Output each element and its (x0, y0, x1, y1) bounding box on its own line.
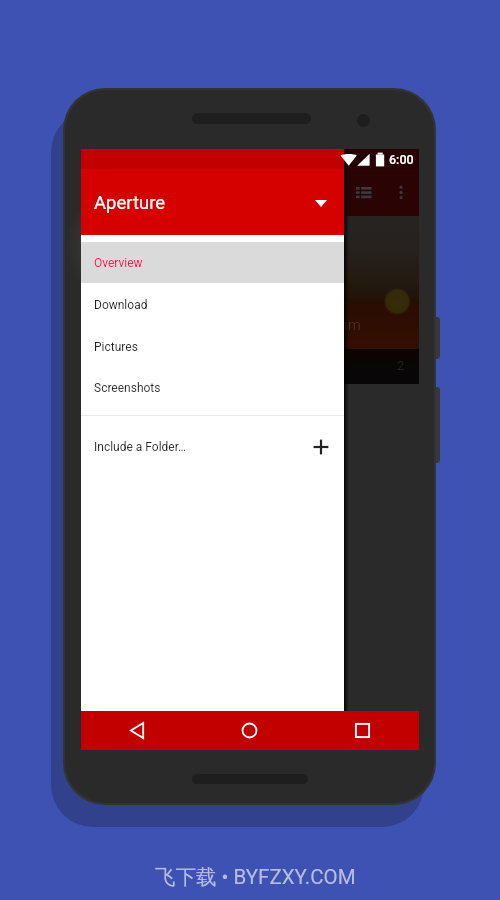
button[interactable]: Pictures (81, 326, 344, 367)
staticText: Pictures (94, 340, 138, 354)
button[interactable]: Overview (81, 242, 344, 283)
button[interactable]: Screenshots (81, 367, 344, 408)
button[interactable]: List view (349, 177, 380, 208)
staticText: 6:00 (389, 152, 414, 167)
button[interactable]: Home (193, 711, 306, 750)
button[interactable]: More options (387, 177, 415, 205)
staticText: Aperture (94, 192, 166, 214)
staticText: Camera Roll Album (233, 316, 361, 334)
staticText: Overview (94, 256, 143, 270)
staticText: Include a Folder… (94, 440, 187, 454)
button[interactable]: Recents (306, 711, 419, 750)
staticText: Screenshots (94, 381, 161, 395)
button[interactable]: Download (81, 284, 344, 325)
staticText: 2 (397, 358, 405, 373)
staticText: 飞下载 • BYFZXY.COM (155, 864, 356, 890)
button[interactable]: Back (81, 711, 193, 750)
staticText: Download (94, 298, 148, 312)
button[interactable]: Include a Folder… (81, 426, 344, 468)
